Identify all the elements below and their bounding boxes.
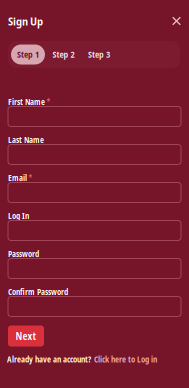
staticText: Sign Up bbox=[8, 13, 43, 29]
button[interactable]: Step 1 bbox=[11, 44, 45, 64]
button[interactable]: Close bbox=[168, 12, 185, 29]
staticText: Click here to Log in bbox=[94, 354, 157, 365]
staticText: Last Name bbox=[8, 135, 44, 145]
staticText: Step 3 bbox=[88, 49, 110, 60]
staticText: Log In bbox=[8, 211, 29, 221]
staticText: Step 2 bbox=[52, 49, 74, 60]
staticText: Confirm Password bbox=[8, 287, 68, 297]
staticText: * bbox=[46, 97, 50, 107]
button[interactable]: Step 2 bbox=[46, 44, 80, 64]
button[interactable]: Click here to Log in bbox=[94, 354, 157, 365]
staticText: Password bbox=[8, 249, 39, 259]
staticText: Email bbox=[8, 173, 27, 183]
staticText: * bbox=[28, 173, 32, 183]
button[interactable]: Step 3 bbox=[82, 44, 116, 64]
staticText: First Name bbox=[8, 97, 45, 107]
staticText: Step 1 bbox=[17, 49, 39, 60]
button[interactable]: Next bbox=[8, 325, 44, 346]
staticText: Next bbox=[15, 329, 36, 343]
staticText: Already have an account? bbox=[7, 354, 91, 365]
